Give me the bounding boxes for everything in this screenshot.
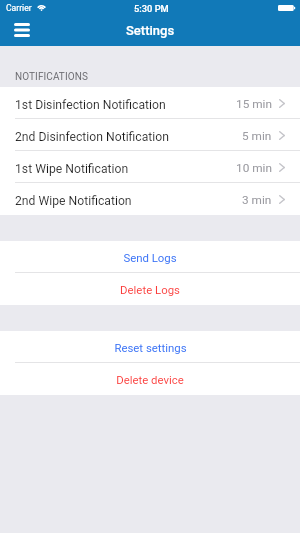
staticText: NOTIFICATIONS bbox=[15, 71, 88, 83]
staticText: Send Logs bbox=[123, 251, 177, 264]
staticText: 2nd Wipe Notification bbox=[15, 194, 132, 208]
staticText: 10 min bbox=[236, 161, 272, 175]
button[interactable]: Send Logs bbox=[0, 241, 300, 273]
button[interactable]: 2nd Wipe Notification bbox=[0, 183, 300, 215]
staticText: Reset settings bbox=[114, 341, 187, 354]
staticText: 2nd Disinfection Notification bbox=[15, 130, 170, 144]
staticText: Delete device bbox=[116, 373, 184, 386]
staticText: 5 min bbox=[242, 129, 272, 143]
staticText: 1st Wipe Notification bbox=[15, 162, 129, 176]
button[interactable]: Reset settings bbox=[0, 331, 300, 363]
staticText: 3 min bbox=[242, 193, 272, 207]
staticText: Settings bbox=[126, 23, 175, 38]
button[interactable]: Menu bbox=[0, 17, 44, 43]
staticText: 1st Disinfection Notification bbox=[15, 98, 166, 112]
button[interactable]: 1st Disinfection Notification bbox=[0, 87, 300, 119]
button[interactable]: 1st Wipe Notification bbox=[0, 151, 300, 183]
button[interactable]: 2nd Disinfection Notification bbox=[0, 119, 300, 151]
button[interactable]: Delete device bbox=[0, 363, 300, 395]
staticText: 5:30 PM bbox=[134, 3, 169, 14]
staticText: 15 min bbox=[236, 97, 272, 111]
staticText: Delete Logs bbox=[120, 283, 180, 296]
staticText: Carrier bbox=[6, 3, 32, 13]
button[interactable]: Delete Logs bbox=[0, 273, 300, 305]
